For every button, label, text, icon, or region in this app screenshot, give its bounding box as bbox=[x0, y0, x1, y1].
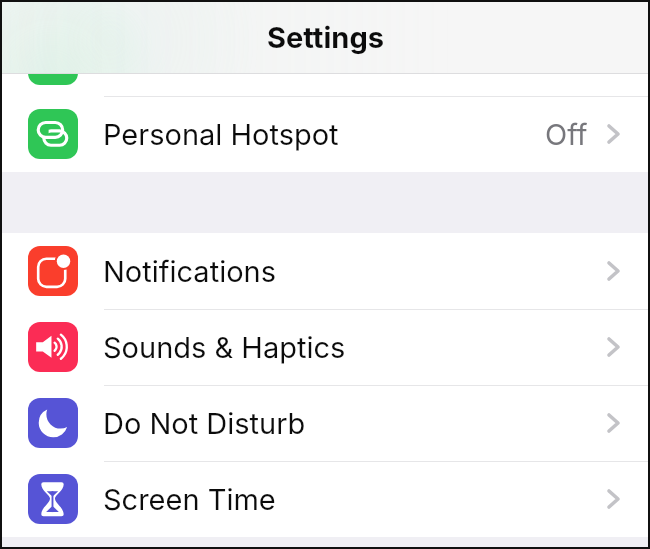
staticText: Notifications bbox=[103, 254, 276, 289]
button[interactable]: Sounds and Haptics bbox=[0, 309, 650, 385]
staticText: Sounds & Haptics bbox=[103, 330, 346, 365]
button[interactable]: Personal Hotspot bbox=[0, 96, 650, 172]
staticText: Settings bbox=[267, 20, 384, 55]
staticText: Personal Hotspot bbox=[103, 117, 339, 152]
other: Screen Time bbox=[28, 474, 78, 524]
button[interactable]: Screen Time bbox=[0, 461, 650, 537]
other: Personal Hotspot bbox=[28, 109, 78, 159]
other: Notifications bbox=[28, 246, 78, 296]
staticText: Do Not Disturb bbox=[103, 406, 306, 441]
other: Sounds and Haptics bbox=[28, 322, 78, 372]
staticText: Off bbox=[545, 117, 588, 152]
staticText: Screen Time bbox=[103, 482, 276, 517]
button[interactable]: Notifications bbox=[0, 233, 650, 309]
button[interactable]: Do Not Disturb bbox=[0, 385, 650, 461]
other: Do Not Disturb bbox=[28, 398, 78, 448]
